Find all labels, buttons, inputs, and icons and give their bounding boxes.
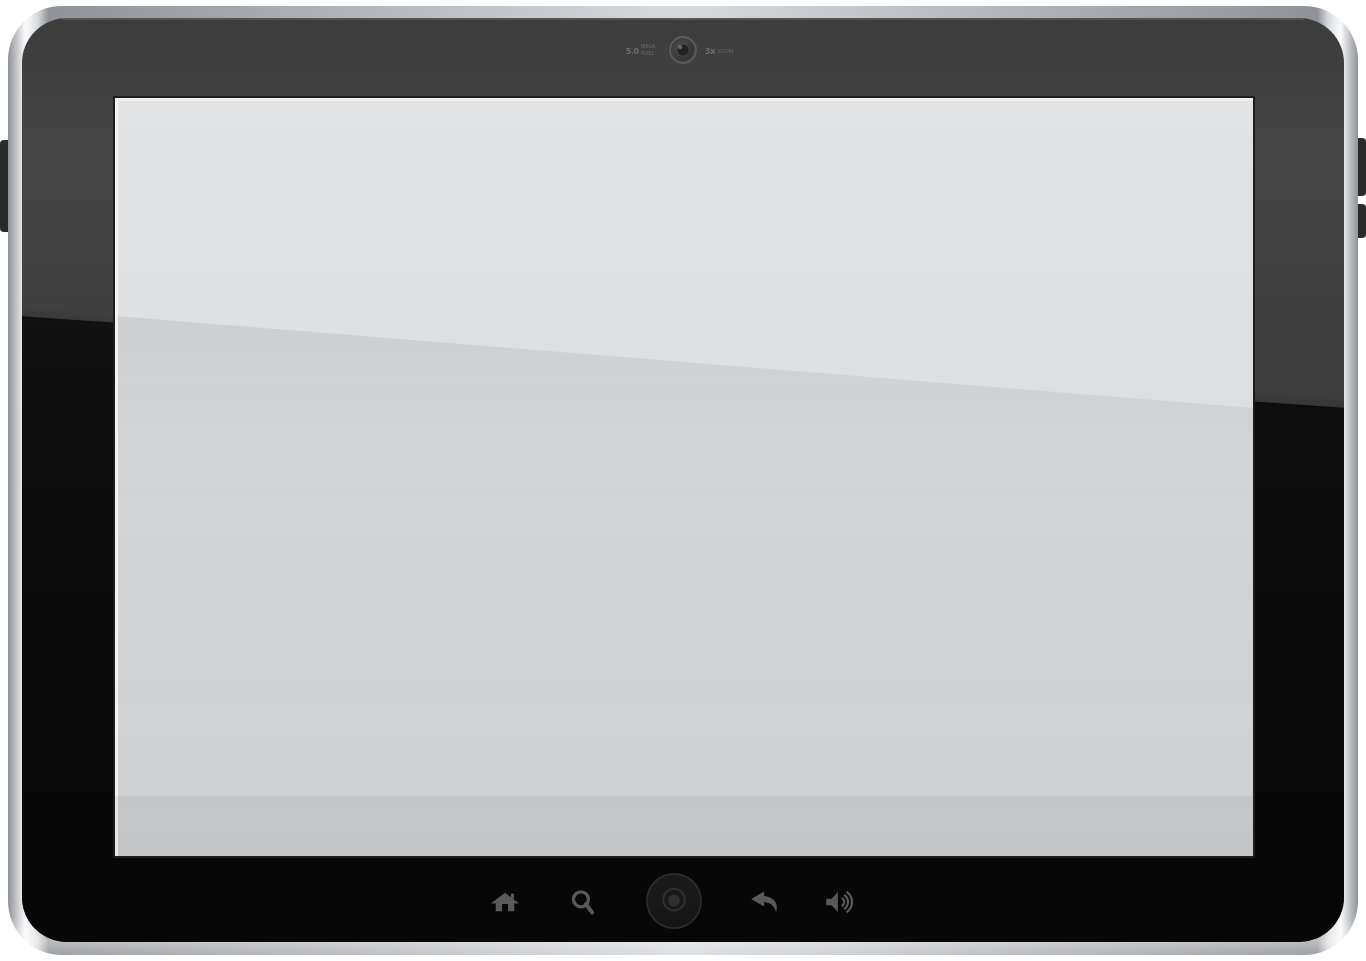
button[interactable]: Home button — [645, 872, 703, 930]
button[interactable]: Back — [747, 884, 783, 920]
button[interactable]: Search — [565, 884, 601, 920]
staticText: 5.0 — [626, 44, 639, 56]
staticText: ZOOM — [718, 48, 734, 55]
button[interactable]: Volume — [822, 884, 858, 920]
staticText: 3x — [705, 44, 716, 56]
staticText: MEGA PIXEL — [641, 43, 656, 56]
button[interactable]: Home — [487, 884, 523, 920]
